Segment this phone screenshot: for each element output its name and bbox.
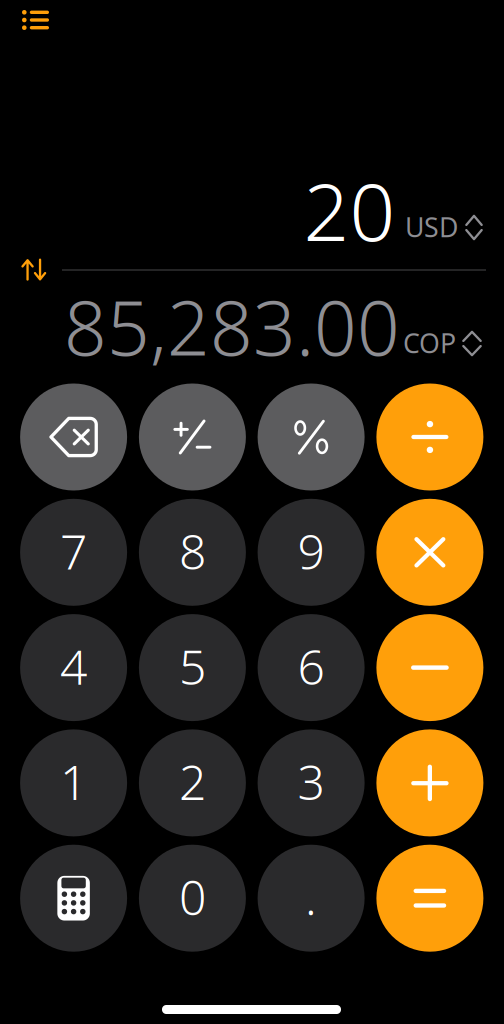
button[interactable]: 2 (139, 729, 246, 836)
button[interactable]: 1 (20, 729, 127, 836)
staticText: . (305, 865, 317, 928)
button[interactable]: Delete (20, 383, 127, 490)
button[interactable]: Swap currencies (5, 245, 63, 293)
staticText: 20 (303, 157, 395, 263)
button[interactable]: Plus (376, 729, 483, 836)
staticText: 3 (298, 749, 325, 813)
staticText: 8 (179, 519, 206, 583)
staticText: 85,283.00 (64, 277, 400, 376)
button[interactable]: 0 (139, 845, 246, 952)
button[interactable]: 7 (20, 499, 127, 606)
button[interactable]: Divide (376, 383, 483, 490)
button[interactable]: 3 (258, 729, 365, 836)
button[interactable]: 4 (20, 614, 127, 721)
button[interactable]: 9 (258, 499, 365, 606)
staticText: COP (403, 325, 456, 361)
button[interactable]: 5 (139, 614, 246, 721)
staticText: 5 (179, 634, 206, 698)
button[interactable]: Equals (376, 845, 483, 952)
button[interactable]: Percent (258, 383, 365, 490)
button[interactable]: From currency, USD (395, 199, 493, 255)
staticText: 6 (298, 634, 325, 698)
staticText: 2 (179, 749, 206, 813)
staticText: USD (405, 209, 458, 245)
staticText: 4 (60, 634, 87, 698)
button[interactable]: Plus minus (139, 383, 246, 490)
button[interactable]: Minus (376, 614, 483, 721)
button[interactable]: 8 (139, 499, 246, 606)
button[interactable]: Currency list (4, 0, 66, 47)
button[interactable]: Multiply (376, 499, 483, 606)
staticText: 7 (60, 519, 87, 583)
button[interactable]: . (258, 845, 365, 952)
button[interactable]: To currency, COP (393, 315, 492, 371)
button[interactable]: Calculator (20, 845, 127, 952)
staticText: 1 (60, 749, 87, 813)
button[interactable]: 6 (258, 614, 365, 721)
staticText: 0 (179, 865, 206, 928)
staticText: 9 (298, 519, 325, 583)
